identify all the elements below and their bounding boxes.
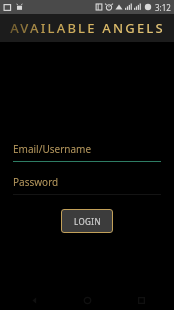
staticText: AVAILABLE ANGELS <box>10 19 165 37</box>
staticText: Email/Username <box>13 142 92 156</box>
button[interactable]: Email/Username <box>0 142 174 162</box>
button[interactable]: Password <box>0 175 174 195</box>
button[interactable]: LOGIN <box>61 209 113 233</box>
staticText: 3:12 <box>155 2 171 13</box>
staticText: Password <box>13 175 59 189</box>
staticText: LOGIN <box>74 216 101 227</box>
